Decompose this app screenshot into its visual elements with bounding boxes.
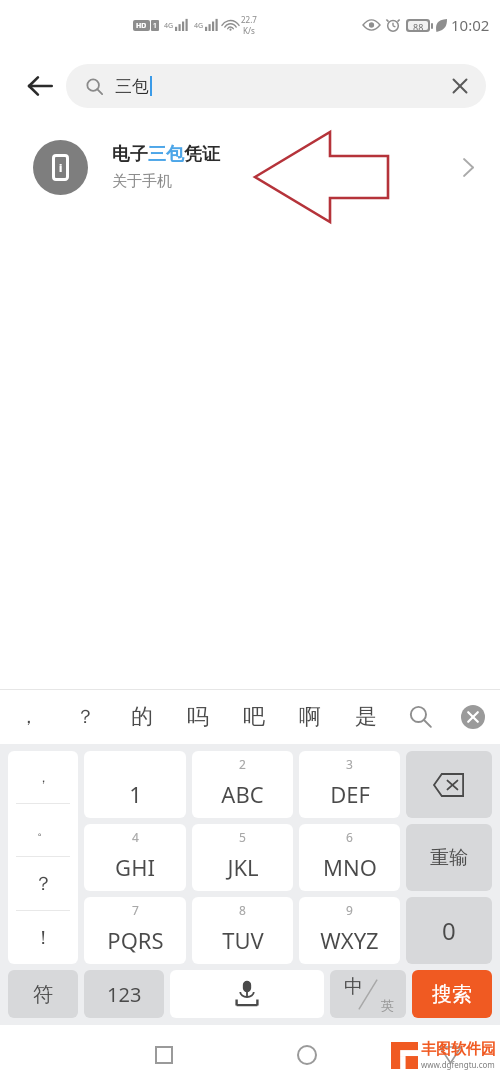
staticText: 22.7: [241, 14, 257, 25]
button[interactable]: Clear: [438, 64, 482, 108]
staticText: DEF: [330, 779, 370, 809]
button[interactable]: ？: [57, 689, 114, 744]
staticText: ？: [34, 872, 53, 896]
staticText: TUV: [222, 925, 264, 955]
button[interactable]: 4: [84, 824, 186, 891]
staticText: 4: [132, 829, 139, 845]
staticText: 0: [442, 914, 456, 947]
staticText: MNO: [323, 852, 377, 882]
staticText: 符: [33, 982, 53, 1007]
button[interactable]: 2: [192, 751, 293, 818]
staticText: HD: [136, 21, 147, 31]
button[interactable]: Home: [279, 1027, 335, 1083]
button[interactable]: 重输: [406, 824, 492, 891]
button[interactable]: 三包: [66, 64, 486, 108]
button[interactable]: ！: [8, 911, 78, 964]
staticText: 9: [346, 902, 353, 918]
button[interactable]: Space / Voice input: [170, 970, 324, 1018]
staticText: ！: [34, 926, 53, 950]
button[interactable]: Back: [14, 60, 66, 112]
staticText: GHI: [115, 852, 155, 882]
staticText: i: [59, 160, 63, 175]
staticText: 8: [239, 902, 246, 918]
button[interactable]: 5: [192, 824, 293, 891]
staticText: 7: [132, 902, 139, 918]
button[interactable]: Delete: [406, 751, 492, 818]
button[interactable]: 6: [299, 824, 400, 891]
staticText: 重输: [430, 846, 468, 870]
button[interactable]: 的: [114, 689, 170, 744]
button[interactable]: 符: [8, 970, 78, 1018]
button[interactable]: 啊: [282, 689, 338, 744]
button[interactable]: ？: [8, 857, 78, 910]
staticText: 2: [239, 756, 246, 772]
staticText: 是: [355, 703, 377, 731]
staticText: 吧: [243, 703, 265, 731]
button[interactable]: 吗: [170, 689, 226, 744]
button[interactable]: 9: [299, 897, 400, 964]
staticText: ABC: [221, 779, 264, 809]
staticText: PQRS: [107, 925, 164, 955]
button[interactable]: i: [0, 122, 500, 212]
button[interactable]: 8: [192, 897, 293, 964]
staticText: www.dgfengtu.com: [421, 1059, 495, 1070]
staticText: ，: [19, 705, 38, 729]
staticText: 123: [107, 981, 142, 1008]
button[interactable]: 是: [338, 689, 394, 744]
staticText: JKL: [227, 852, 259, 882]
staticText: 4G: [164, 21, 174, 31]
staticText: 5: [239, 829, 246, 845]
button[interactable]: 7: [84, 897, 186, 964]
button[interactable]: ，: [0, 689, 57, 744]
button[interactable]: Recents: [136, 1027, 192, 1083]
staticText: 三包: [115, 76, 149, 97]
staticText: 的: [131, 703, 153, 731]
button[interactable]: 123: [84, 970, 164, 1018]
staticText: 关于手机: [112, 172, 172, 191]
staticText: ？: [76, 705, 95, 729]
button[interactable]: 搜索: [412, 970, 492, 1018]
staticText: 啊: [299, 703, 321, 731]
staticText: 吗: [187, 703, 209, 731]
button[interactable]: 吧: [226, 689, 282, 744]
staticText: 3: [346, 756, 353, 772]
staticText: K/s: [243, 25, 255, 36]
button[interactable]: 0: [406, 897, 492, 964]
staticText: 88: [413, 21, 424, 30]
staticText: 1: [153, 21, 158, 31]
staticText: 丰图软件园: [421, 1040, 496, 1059]
staticText: WXYZ: [320, 925, 379, 955]
staticText: 10:02: [451, 15, 490, 35]
staticText: 6: [346, 829, 353, 845]
staticText: ，: [37, 769, 50, 785]
button[interactable]: 1: [84, 751, 186, 818]
button[interactable]: Search candidates: [394, 689, 446, 744]
button[interactable]: ，: [8, 751, 78, 803]
button[interactable]: Close keyboard candidates: [446, 689, 500, 744]
staticText: 英: [381, 997, 394, 1013]
staticText: 中: [344, 975, 363, 999]
staticText: 。: [37, 822, 50, 838]
button[interactable]: Chinese English toggle: [330, 970, 406, 1018]
button[interactable]: 3: [299, 751, 400, 818]
staticText: 搜索: [432, 982, 472, 1007]
button[interactable]: 。: [8, 804, 78, 856]
button[interactable]: Back: [422, 1027, 478, 1083]
staticText: 电子三包凭证: [112, 143, 220, 166]
staticText: 1: [129, 779, 142, 809]
staticText: 4G: [194, 21, 204, 31]
